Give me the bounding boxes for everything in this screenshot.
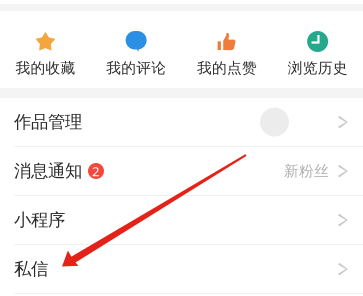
- staticText: 新粉丝: [284, 162, 329, 180]
- staticText: 小程序: [14, 209, 65, 231]
- button[interactable]: 我的点赞: [181, 31, 272, 77]
- button[interactable]: 我的收藏: [0, 31, 91, 77]
- staticText: 我的点赞: [197, 59, 257, 77]
- button[interactable]: 浏览历史: [272, 31, 363, 77]
- button[interactable]: 私信: [0, 245, 363, 294]
- staticText: 我的评论: [106, 59, 166, 77]
- staticText: 2: [92, 162, 100, 180]
- button[interactable]: 消息通知: [0, 147, 363, 196]
- button[interactable]: 作品管理: [0, 98, 363, 147]
- staticText: 浏览历史: [288, 59, 348, 77]
- staticText: 我的收藏: [15, 59, 75, 77]
- button[interactable]: 小程序: [0, 196, 363, 245]
- staticText: 私信: [14, 258, 48, 280]
- staticText: 消息通知: [14, 160, 82, 182]
- staticText: 作品管理: [14, 111, 82, 133]
- button[interactable]: 我的评论: [91, 31, 182, 77]
